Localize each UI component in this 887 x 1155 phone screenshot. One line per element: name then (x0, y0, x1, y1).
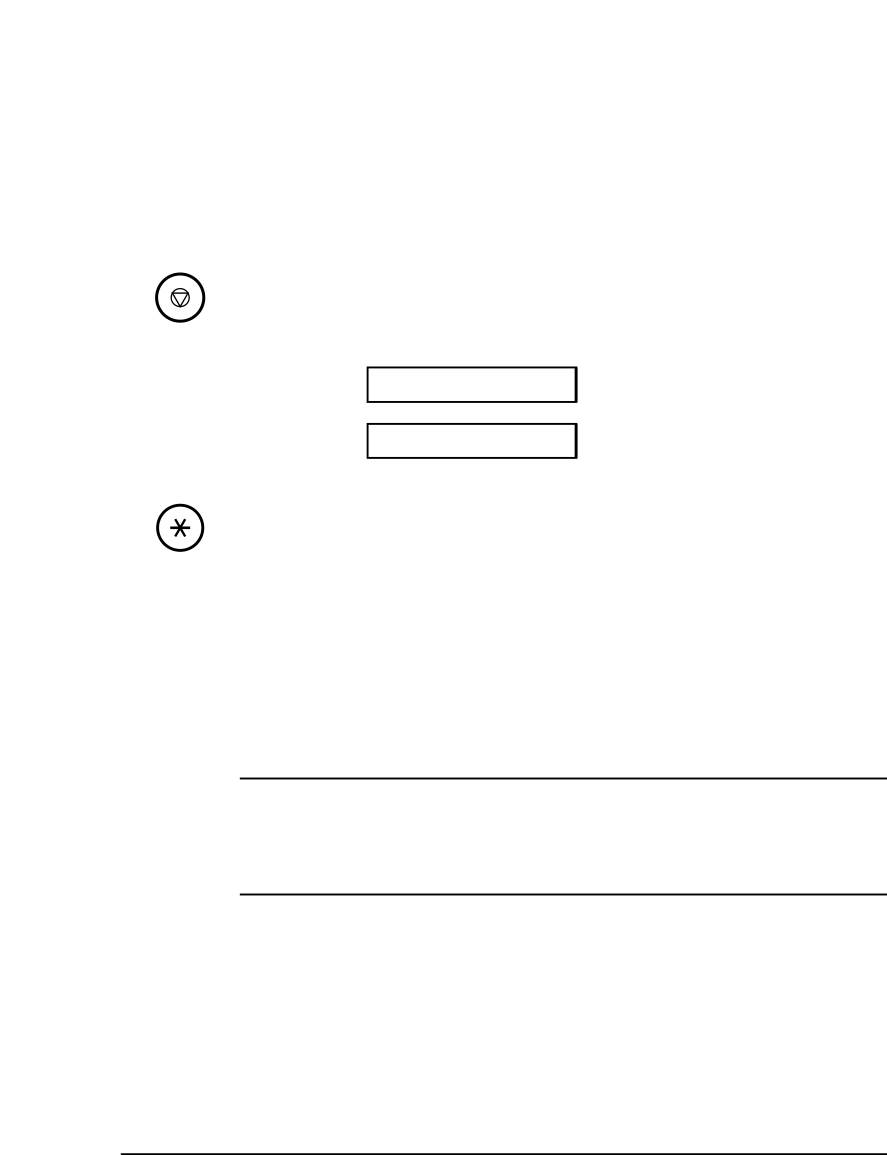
button[interactable]: Second field (367, 423, 577, 459)
button[interactable]: Snowflake (154, 502, 206, 554)
button[interactable]: Stop (154, 272, 206, 324)
button[interactable]: First field (367, 366, 577, 403)
